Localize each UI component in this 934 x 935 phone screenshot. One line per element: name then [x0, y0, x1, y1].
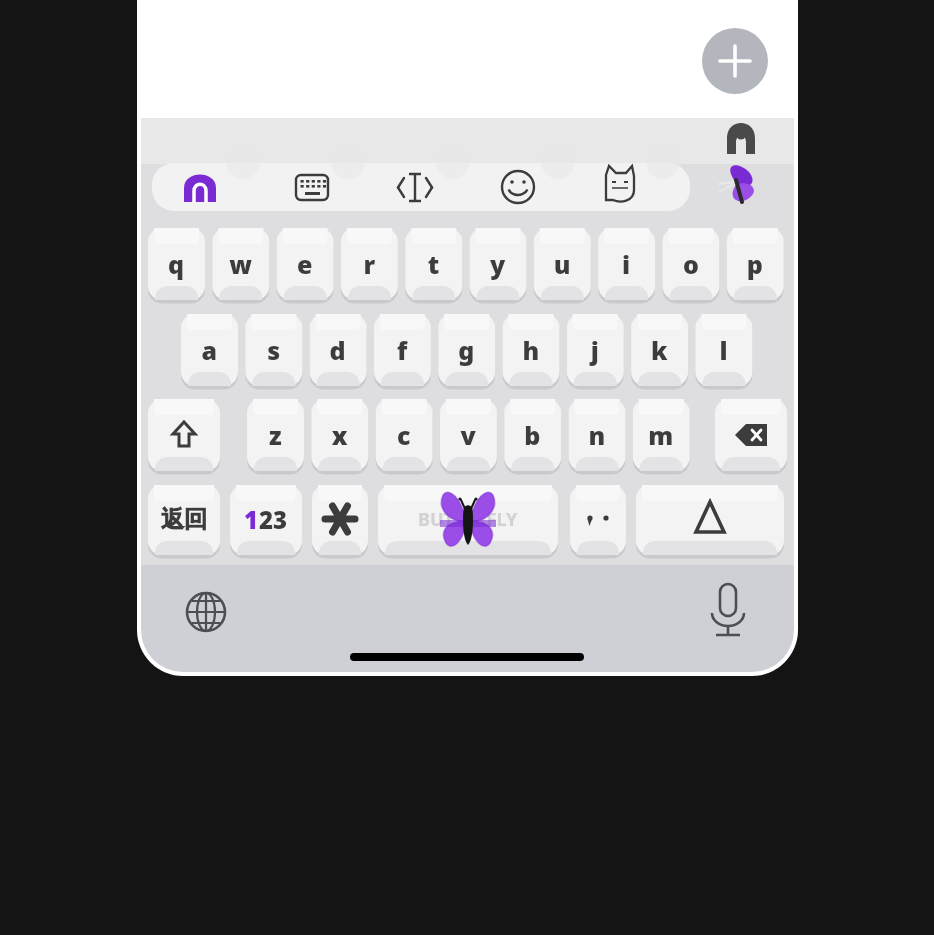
button[interactable]: Add — [702, 28, 768, 94]
button[interactable]: App logo — [718, 118, 764, 162]
button[interactable]: Backspace — [715, 399, 787, 471]
button[interactable] — [373, 314, 430, 386]
button[interactable] — [504, 399, 561, 471]
button[interactable] — [566, 314, 623, 386]
button[interactable] — [568, 399, 625, 471]
button[interactable] — [405, 228, 462, 300]
button[interactable] — [533, 228, 590, 300]
button[interactable] — [469, 228, 526, 300]
button[interactable]: Change language — [176, 582, 236, 642]
button[interactable] — [245, 314, 302, 386]
button[interactable] — [340, 228, 397, 300]
button[interactable]: Keyboard — [288, 163, 336, 211]
button[interactable] — [375, 399, 432, 471]
button[interactable] — [309, 314, 366, 386]
button[interactable] — [148, 228, 205, 300]
button[interactable]: Space — [378, 485, 558, 555]
button[interactable] — [632, 399, 689, 471]
button[interactable]: Voice input — [698, 582, 758, 642]
button[interactable] — [502, 314, 559, 386]
button[interactable]: Shift — [636, 485, 784, 555]
button[interactable] — [230, 485, 302, 555]
button[interactable] — [726, 228, 783, 300]
button[interactable] — [598, 228, 655, 300]
button[interactable]: Symbols — [312, 485, 368, 555]
button[interactable] — [311, 399, 368, 471]
button[interactable] — [212, 228, 269, 300]
button[interactable] — [695, 314, 752, 386]
button[interactable] — [662, 228, 719, 300]
button[interactable]: Stickers — [596, 163, 644, 211]
button[interactable] — [276, 228, 333, 300]
button[interactable] — [148, 485, 220, 555]
button[interactable] — [438, 314, 495, 386]
button[interactable]: Butterfly theme — [714, 160, 768, 214]
button[interactable] — [439, 399, 496, 471]
button[interactable]: Home — [176, 163, 224, 211]
button[interactable] — [181, 314, 238, 386]
button[interactable]: Shift — [148, 399, 220, 471]
button[interactable] — [631, 314, 688, 386]
button[interactable]: Text editing — [391, 163, 439, 211]
button[interactable]: Emoji — [494, 163, 542, 211]
button[interactable] — [570, 485, 626, 555]
button[interactable] — [247, 399, 304, 471]
